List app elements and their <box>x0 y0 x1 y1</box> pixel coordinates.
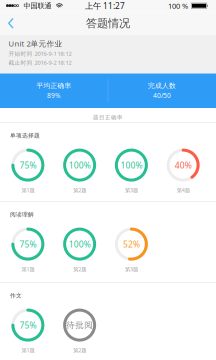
staticText: 40% <box>175 159 192 171</box>
staticText: 阅读理解 <box>10 211 34 218</box>
staticText: 第4题 <box>177 187 190 194</box>
staticText: 答题情况 <box>86 16 130 30</box>
staticText: 第2题 <box>73 266 86 273</box>
staticText: 75% <box>19 319 36 331</box>
staticText: 题目正确率 <box>93 114 123 121</box>
staticText: 完成人数 <box>148 81 176 90</box>
staticText: 单项选择题 <box>10 132 40 139</box>
staticText: 平均正确率 <box>36 81 71 90</box>
staticText: 待批阅 <box>66 320 93 330</box>
staticText: 第2题 <box>73 187 86 194</box>
staticText: 作文 <box>10 292 22 299</box>
staticText: 100% <box>69 238 91 250</box>
staticText: 89% <box>47 91 61 100</box>
staticText: Unit 2单元作业 <box>8 38 62 49</box>
staticText: 75% <box>19 238 36 250</box>
staticText: 开始时间 2016-9-1 18:12 <box>8 50 71 57</box>
staticText: 第2题 <box>73 347 86 354</box>
staticText: 第3题 <box>125 266 138 273</box>
staticText: 中国联通 <box>23 1 51 10</box>
staticText: 第1题 <box>21 187 34 194</box>
staticText: 100% <box>69 159 91 171</box>
staticText: 40/50 <box>153 91 171 100</box>
staticText: 截止时间 2016-9-2 18:12 <box>8 59 71 66</box>
staticText: 第1题 <box>21 347 34 354</box>
staticText: 第3题 <box>125 187 138 194</box>
staticText: 75% <box>19 159 36 171</box>
staticText: 上午 11:27 <box>85 0 125 11</box>
staticText: 52% <box>123 238 140 250</box>
staticText: 100 % <box>168 1 188 11</box>
button[interactable]: Back <box>0 13 23 33</box>
staticText: 100% <box>120 159 142 171</box>
staticText: 第1题 <box>21 266 34 273</box>
